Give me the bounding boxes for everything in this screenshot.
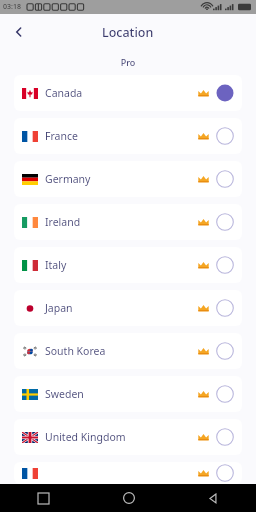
staticText: Sweden [45, 387, 84, 401]
staticText: Japan [45, 301, 73, 315]
button[interactable]: Japan [14, 290, 242, 326]
staticText: Germany [45, 172, 91, 186]
staticText: South Korea [45, 344, 106, 358]
button[interactable]: Ireland [14, 204, 242, 240]
button[interactable]: Back [171, 484, 256, 512]
staticText: Pro [0, 56, 256, 68]
staticText: 03:18 [3, 2, 21, 12]
button[interactable]: Sweden [14, 376, 242, 412]
button[interactable]: Back [6, 19, 32, 45]
staticText: United Kingdom [45, 430, 126, 444]
staticText: Location [102, 24, 154, 41]
button[interactable]: France [14, 118, 242, 154]
button[interactable]: South Korea [14, 333, 242, 369]
staticText: Ireland [45, 215, 81, 229]
button[interactable]: Recent apps [0, 484, 86, 512]
button[interactable]: Canada [14, 75, 242, 111]
button[interactable]: Italy [14, 247, 242, 283]
button[interactable]: Germany [14, 161, 242, 197]
staticText: Italy [45, 258, 67, 272]
button[interactable]: United Kingdom [14, 419, 242, 455]
button[interactable]: Home [86, 484, 171, 512]
button[interactable] [14, 462, 242, 484]
staticText: France [45, 129, 78, 143]
staticText: Canada [45, 86, 83, 100]
